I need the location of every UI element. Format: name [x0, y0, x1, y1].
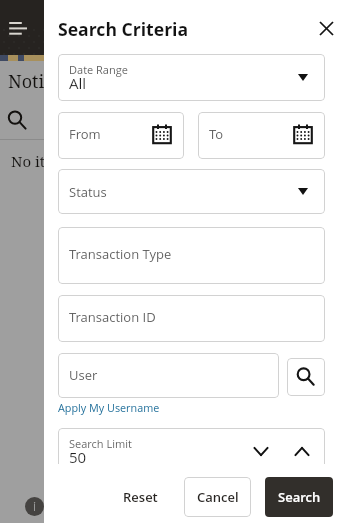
button[interactable]: Apply My Username — [58, 400, 160, 415]
button[interactable]: Decrease search limit — [247, 437, 275, 464]
button[interactable]: Open navigation menu — [5, 16, 33, 44]
staticText: From — [69, 125, 101, 143]
button[interactable]: From — [58, 112, 184, 159]
staticText: Date Range — [69, 62, 128, 77]
button[interactable]: Search Limit — [58, 428, 325, 464]
button[interactable]: User — [58, 353, 279, 398]
staticText: Search Limit — [69, 436, 132, 451]
staticText: Notifications — [8, 69, 118, 94]
button[interactable]: Increase search limit — [288, 437, 316, 464]
button[interactable]: Reset — [114, 477, 166, 517]
button[interactable]: Transaction Type — [58, 227, 325, 284]
button[interactable]: Search — [6, 109, 28, 131]
staticText: Reset — [123, 488, 158, 506]
staticText: Apply My Username — [58, 400, 160, 415]
staticText: Search Criteria — [58, 17, 189, 41]
staticText: Search — [278, 488, 321, 506]
button[interactable]: Date Range — [58, 54, 325, 101]
button[interactable]: Close — [311, 13, 341, 43]
staticText: Transaction ID — [69, 308, 156, 326]
button[interactable]: Information — [25, 497, 44, 516]
button[interactable]: Transaction ID — [58, 295, 325, 342]
staticText: To — [209, 125, 224, 143]
button[interactable]: Status — [58, 169, 325, 214]
staticText: Cancel — [197, 488, 239, 506]
staticText: 50 — [69, 447, 87, 464]
staticText: Status — [69, 183, 107, 201]
staticText: i — [33, 498, 37, 514]
button[interactable]: Cancel — [184, 477, 251, 517]
button[interactable]: Search — [265, 477, 333, 517]
staticText: User — [69, 366, 98, 384]
button[interactable]: To — [198, 112, 325, 159]
staticText: Transaction Type — [69, 245, 172, 263]
staticText: No items — [11, 151, 75, 171]
staticText: All — [69, 73, 87, 93]
button[interactable]: Look up user — [287, 358, 325, 396]
